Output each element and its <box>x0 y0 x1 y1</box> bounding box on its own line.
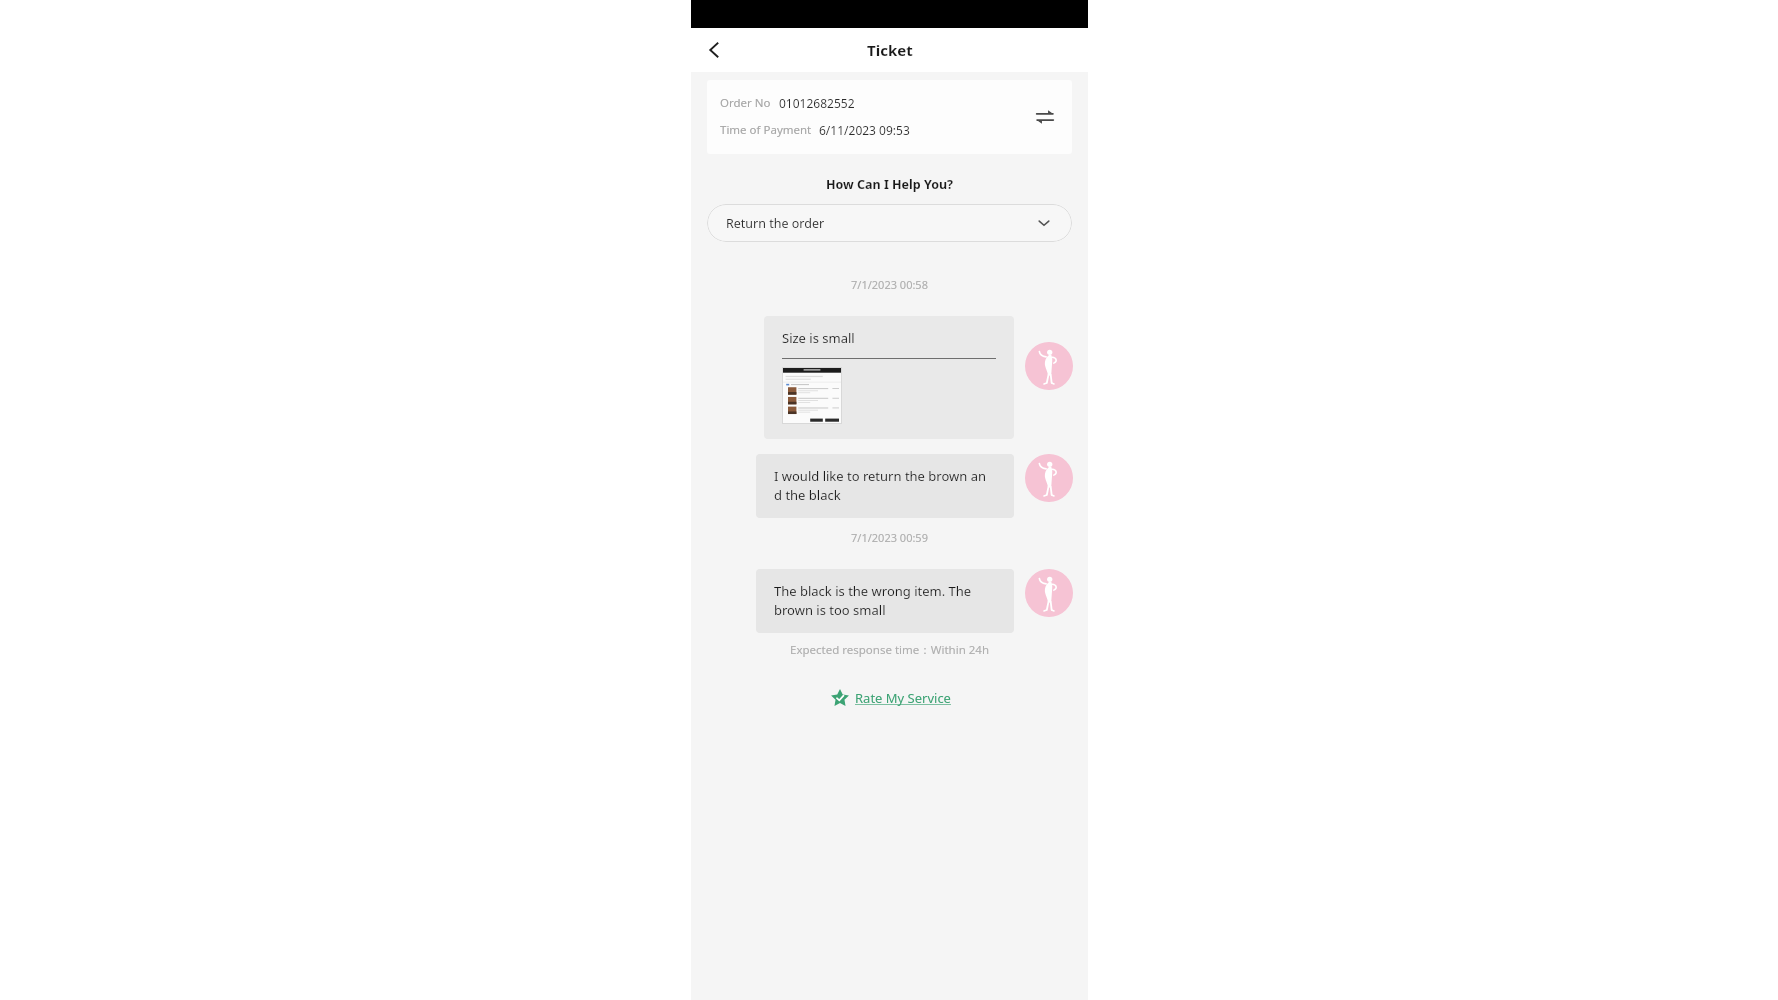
button[interactable]: Attached order screenshot <box>782 367 842 424</box>
staticText: The black is the wrong item. The brown i… <box>774 582 972 619</box>
staticText: Expected response time：Within 24h <box>691 642 1088 658</box>
staticText: Ticket <box>867 40 913 60</box>
button[interactable]: Back <box>700 36 728 64</box>
button[interactable]: Customer avatar <box>1025 342 1073 390</box>
button[interactable]: Customer avatar <box>1025 569 1073 617</box>
staticText: 7/1/2023 00:58 <box>691 277 1088 292</box>
button[interactable]: Size is small <box>764 316 1014 439</box>
staticText: Size is small <box>782 329 855 347</box>
staticText: How Can I Help You? <box>691 176 1088 193</box>
staticText: Rate My Service <box>855 689 951 707</box>
staticText: 7/1/2023 00:59 <box>691 530 1088 545</box>
button[interactable]: Swap order <box>1032 104 1058 130</box>
staticText: Return the order <box>726 215 825 232</box>
button[interactable]: Customer avatar <box>1025 454 1073 502</box>
button[interactable]: I would like to return the brown an d th… <box>756 454 1014 518</box>
staticText: I would like to return the brown an d th… <box>774 467 986 504</box>
staticText: Time of Payment <box>720 122 812 138</box>
button[interactable]: Order No <box>707 80 1072 154</box>
button[interactable]: Rate My Service <box>823 684 957 712</box>
staticText: 01012682552 <box>779 95 855 111</box>
button[interactable]: The black is the wrong item. The brown i… <box>756 569 1014 633</box>
staticText: Order No <box>720 95 771 111</box>
staticText: 6/11/2023 09:53 <box>819 122 910 138</box>
button[interactable]: Return the order <box>707 204 1072 242</box>
